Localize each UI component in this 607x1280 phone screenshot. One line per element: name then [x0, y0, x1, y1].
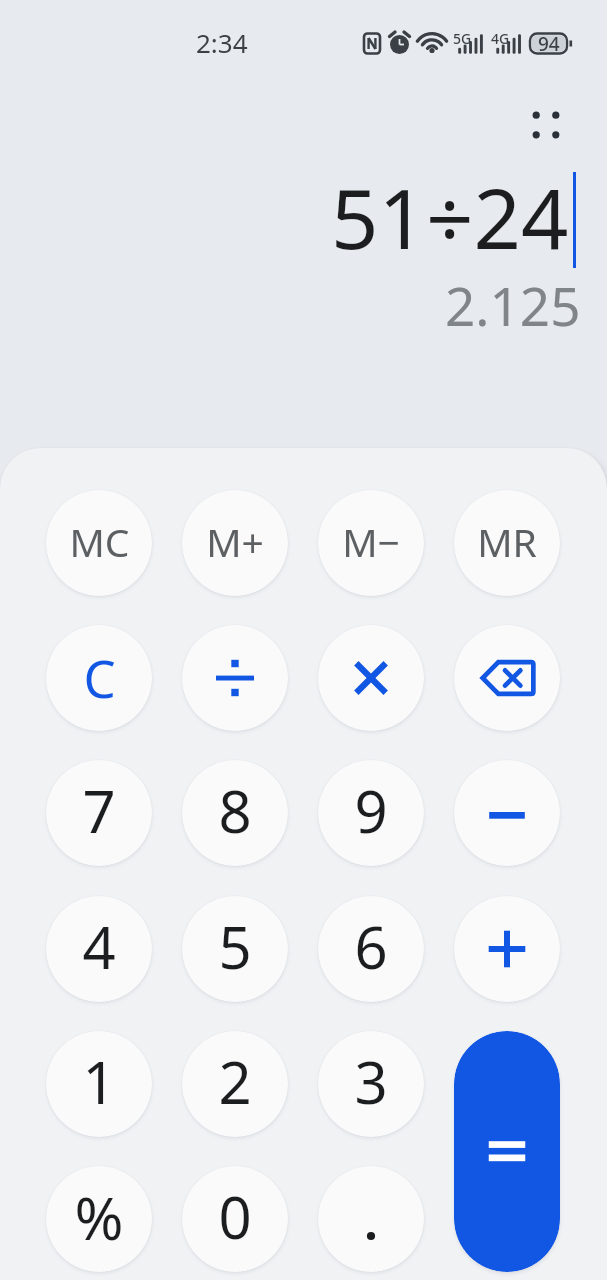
staticText: C	[83, 643, 116, 712]
button[interactable]: Plus	[454, 896, 560, 1002]
button[interactable]: 4	[46, 896, 152, 1002]
staticText: MR	[477, 515, 537, 568]
staticText: 5G	[453, 29, 472, 48]
button[interactable]: Multiply	[318, 625, 424, 731]
staticText: 5	[218, 907, 252, 986]
button[interactable]: 9	[318, 760, 424, 866]
staticText: 94	[538, 31, 560, 57]
button[interactable]: Minus	[454, 760, 560, 866]
staticText: 4G	[491, 29, 510, 48]
button[interactable]: 8	[182, 760, 288, 866]
button[interactable]: 0	[182, 1166, 288, 1272]
button[interactable]: M+	[182, 490, 288, 596]
button[interactable]: 7	[46, 760, 152, 866]
button[interactable]: 6	[318, 896, 424, 1002]
staticText: 2.125	[445, 269, 581, 341]
staticText: 2:34	[196, 25, 248, 60]
button[interactable]: More options	[522, 101, 570, 149]
button[interactable]: 1	[46, 1031, 152, 1137]
button[interactable]: Decimal point	[318, 1166, 424, 1272]
staticText: M+	[206, 515, 264, 568]
staticText: 51÷24	[331, 160, 569, 273]
staticText: 9	[354, 771, 388, 850]
staticText: %	[74, 1177, 124, 1257]
staticText: M−	[342, 515, 400, 568]
button[interactable]: MR	[454, 490, 560, 596]
staticText: 6	[354, 907, 388, 986]
button[interactable]: 3	[318, 1031, 424, 1137]
button[interactable]: 5	[182, 896, 288, 1002]
staticText: 2	[218, 1042, 252, 1121]
staticText: 4	[82, 907, 116, 986]
staticText: 3	[354, 1042, 388, 1121]
staticText: 8	[218, 771, 252, 850]
button[interactable]: C	[46, 625, 152, 731]
button[interactable]: Equals	[454, 1031, 560, 1272]
button[interactable]: M−	[318, 490, 424, 596]
button[interactable]: 2	[182, 1031, 288, 1137]
staticText: 7	[82, 771, 116, 850]
button[interactable]: MC	[46, 490, 152, 596]
staticText: 1	[82, 1042, 116, 1121]
button[interactable]: Divide	[182, 625, 288, 731]
staticText: MC	[69, 515, 130, 568]
button[interactable]: %	[46, 1166, 152, 1272]
staticText: 0	[218, 1177, 252, 1256]
button[interactable]: Backspace	[454, 625, 560, 731]
